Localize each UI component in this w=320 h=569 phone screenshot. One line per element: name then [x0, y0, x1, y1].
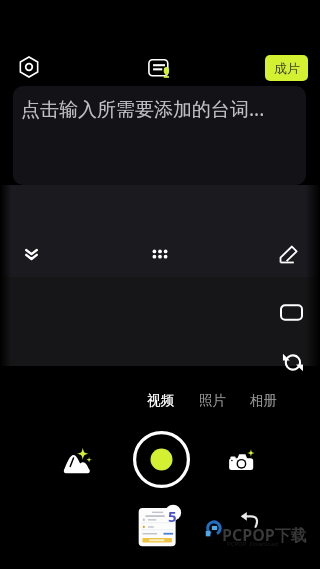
staticText: PCPOP下载	[222, 524, 307, 546]
button[interactable]: Take photo	[226, 445, 258, 477]
staticText: 5	[168, 506, 177, 526]
button[interactable]: Last capture	[137, 506, 179, 548]
button[interactable]: Effects	[145, 239, 175, 269]
staticText: 点击输入所需要添加的台词...	[21, 96, 265, 122]
button[interactable]: Switch camera	[277, 347, 307, 377]
staticText: 成片	[274, 60, 300, 76]
button[interactable]: 成片	[265, 55, 308, 81]
staticText: 相册	[250, 392, 277, 409]
staticText: PCPOP Download	[227, 540, 279, 548]
button[interactable]: Settings	[14, 52, 44, 82]
button[interactable]: Undo	[237, 506, 263, 532]
button[interactable]: 点击输入所需要添加的台词...	[13, 86, 306, 185]
staticText: 视频	[147, 392, 174, 409]
button[interactable]: 视频	[137, 389, 183, 411]
button[interactable]: Beauty filter	[62, 445, 94, 477]
button[interactable]: Teleprompter	[144, 52, 174, 82]
button[interactable]: Edit	[273, 239, 303, 269]
button[interactable]: 相册	[240, 389, 286, 411]
button[interactable]: 照片	[189, 389, 235, 411]
button[interactable]: Collapse	[16, 239, 46, 269]
staticText: 照片	[199, 392, 226, 409]
button[interactable]: Aspect ratio	[276, 297, 306, 327]
button[interactable]: Record	[133, 431, 190, 488]
